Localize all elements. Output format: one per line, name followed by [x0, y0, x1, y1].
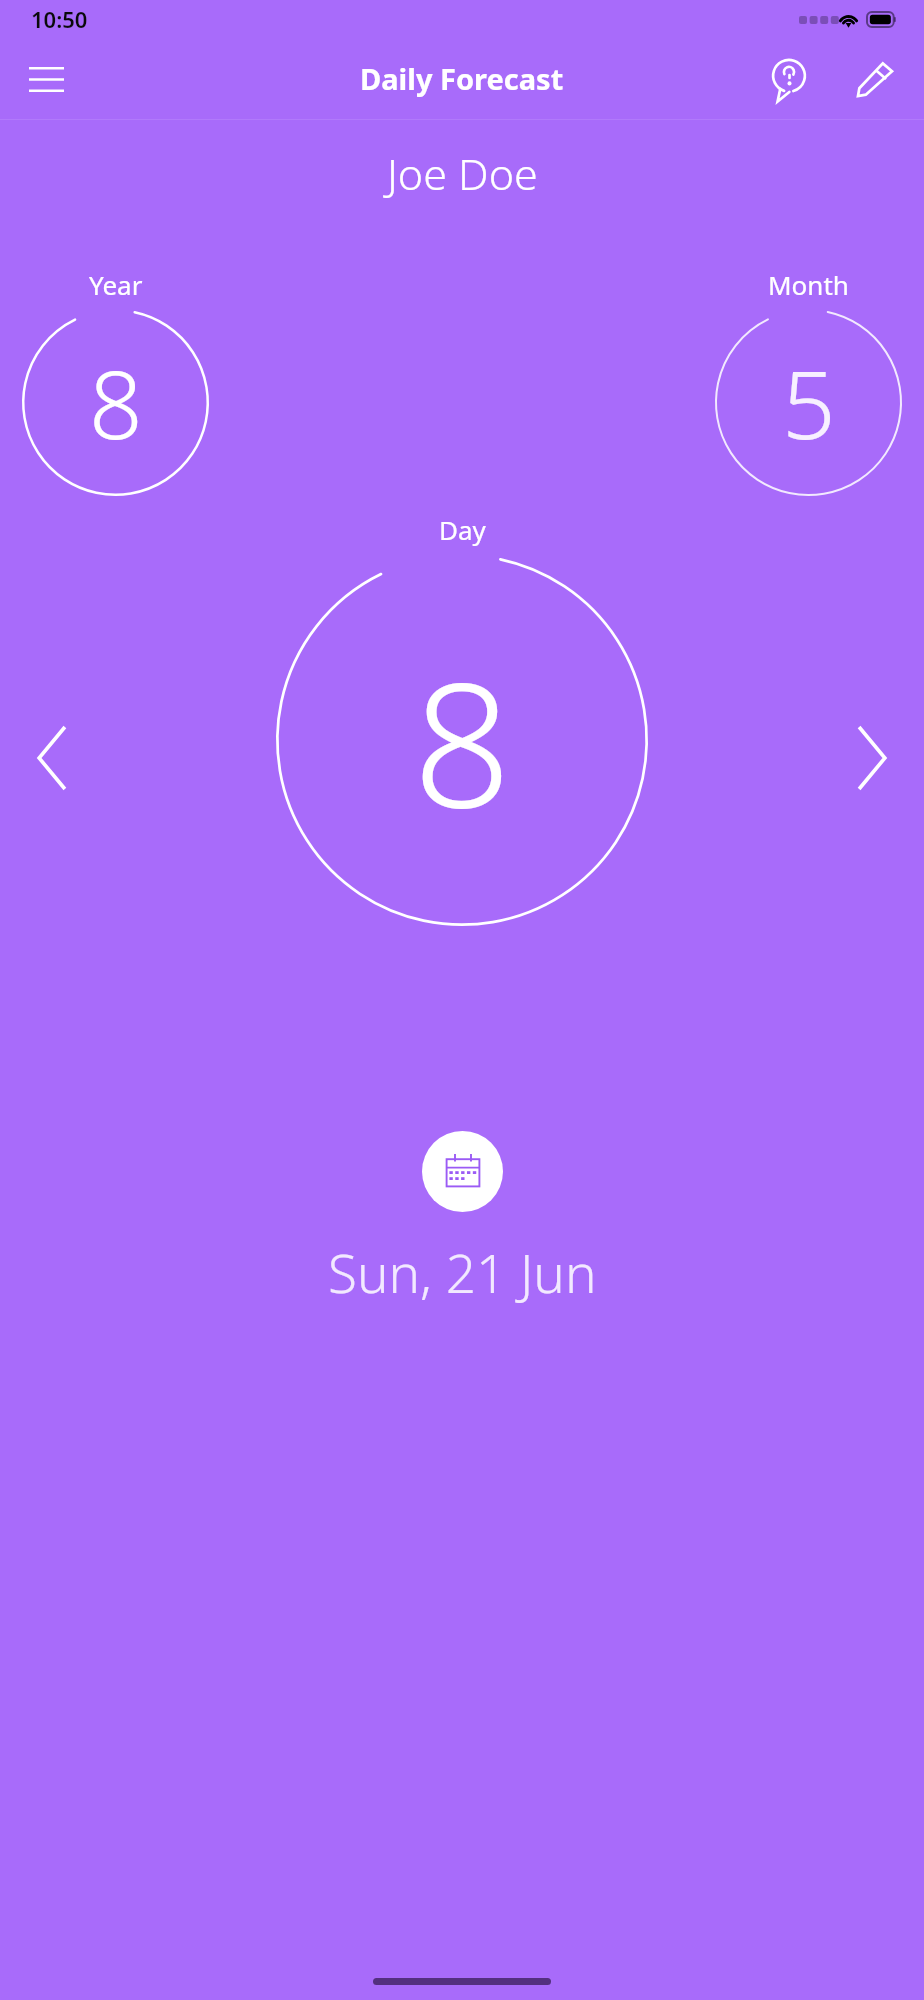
staticText: 8: [413, 623, 512, 857]
staticText: Month: [768, 267, 849, 302]
staticText: Day: [439, 512, 486, 547]
staticText: 10:50: [31, 4, 88, 34]
button[interactable]: Next: [832, 718, 912, 798]
button[interactable]: Edit: [844, 48, 906, 110]
staticText: 8: [89, 339, 143, 467]
button[interactable]: Help: [758, 48, 820, 110]
button[interactable]: Year 8: [22, 267, 209, 496]
button[interactable]: Month 5: [715, 267, 902, 496]
button[interactable]: Pick date: [422, 1131, 503, 1212]
staticText: Joe Doe: [387, 144, 538, 203]
staticText: 5: [782, 339, 836, 467]
staticText: Sun, 21 Jun: [328, 1236, 597, 1308]
button[interactable]: Day 8: [276, 512, 648, 926]
staticText: Year: [89, 267, 143, 302]
staticText: Daily Forecast: [360, 59, 564, 98]
button[interactable]: Previous: [12, 718, 92, 798]
button[interactable]: Menu: [16, 49, 76, 109]
